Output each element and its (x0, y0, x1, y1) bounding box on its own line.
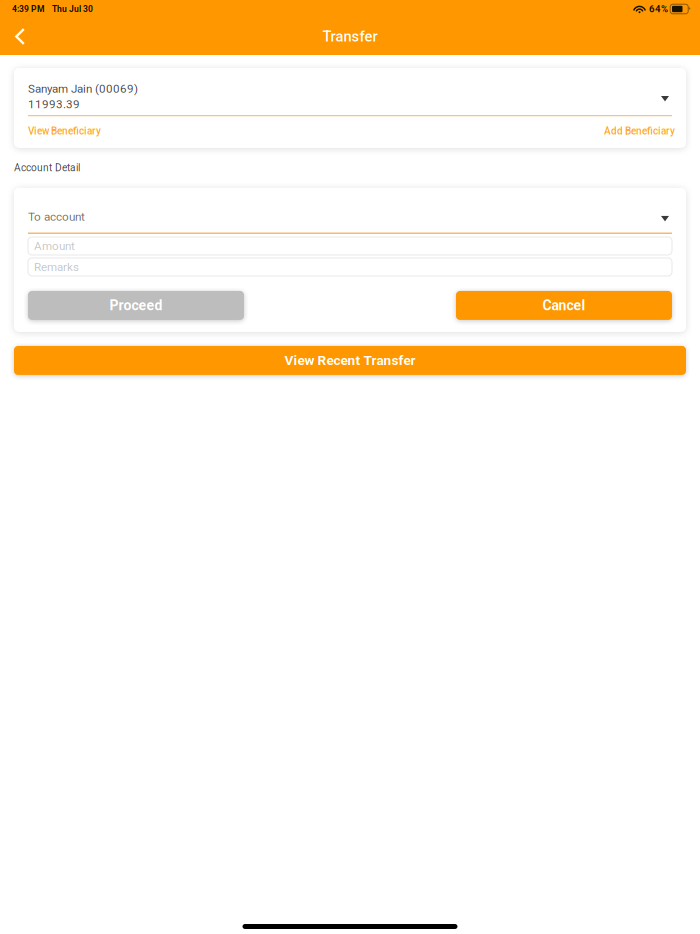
staticText: 64% (649, 3, 668, 15)
staticText: View Beneficiary (28, 125, 101, 137)
staticText: 4:39 PM (12, 4, 44, 14)
button[interactable]: Remarks (28, 258, 672, 276)
button[interactable]: Proceed (28, 291, 244, 320)
button[interactable]: Cancel (456, 291, 672, 320)
staticText: Add Beneficiary (604, 125, 675, 137)
staticText: Proceed (109, 297, 162, 314)
staticText: Account Detail (14, 162, 80, 174)
button[interactable]: Back (0, 18, 40, 55)
button[interactable]: Sanyam Jain (00069) (14, 68, 686, 111)
button[interactable]: View Recent Transfer (14, 346, 686, 375)
staticText: To account (28, 210, 85, 224)
button[interactable]: To account (14, 188, 686, 224)
staticText: 11993.39 (28, 98, 80, 111)
staticText: Sanyam Jain (00069) (28, 82, 138, 96)
staticText: Transfer (322, 28, 377, 45)
staticText: View Recent Transfer (284, 352, 415, 368)
button[interactable]: Add Beneficiary (604, 125, 675, 137)
staticText: Cancel (542, 297, 585, 314)
button[interactable]: Amount (28, 237, 672, 255)
staticText: Thu Jul 30 (52, 4, 93, 14)
staticText: Amount (34, 239, 75, 253)
button[interactable]: View Beneficiary (28, 125, 101, 137)
staticText: Remarks (34, 260, 79, 274)
